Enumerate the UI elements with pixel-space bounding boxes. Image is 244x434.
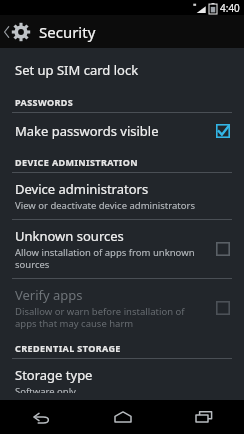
staticText: Disallow or warn before installation of … bbox=[15, 305, 204, 330]
staticText: DEVICE ADMINISTRATION bbox=[15, 156, 138, 168]
staticText: CREDENTIAL STORAGE bbox=[15, 342, 121, 354]
staticText: PASSWORDS bbox=[15, 96, 74, 108]
button[interactable]: Checked bbox=[212, 120, 234, 142]
staticText: View or deactivate device administrators bbox=[15, 199, 195, 212]
staticText: Unknown sources bbox=[15, 227, 124, 245]
staticText: Device administrators bbox=[15, 180, 149, 198]
button[interactable]: Storage type bbox=[0, 359, 244, 400]
button[interactable]: Make passwords visible bbox=[0, 113, 244, 149]
button[interactable]: Navigate up, Security bbox=[0, 15, 244, 48]
button[interactable]: Unchecked bbox=[212, 238, 234, 260]
button[interactable]: Home bbox=[82, 400, 163, 434]
button[interactable]: Back bbox=[0, 400, 82, 434]
staticText: Set up SIM card lock bbox=[15, 61, 139, 79]
staticText: Security bbox=[39, 22, 96, 42]
button[interactable]: Set up SIM card lock bbox=[0, 54, 244, 86]
staticText: Make passwords visible bbox=[15, 122, 159, 140]
button[interactable]: Unknown sources bbox=[0, 220, 244, 278]
button[interactable]: Recent apps bbox=[163, 400, 244, 434]
staticText: Allow installation of apps from unknown … bbox=[15, 246, 204, 271]
button[interactable]: Unchecked bbox=[212, 297, 234, 319]
staticText: Verify apps bbox=[15, 286, 83, 304]
button[interactable]: Device administrators bbox=[0, 173, 244, 219]
button[interactable]: Verify apps bbox=[0, 279, 244, 337]
staticText: 4:40 bbox=[220, 1, 240, 15]
staticText: Software only bbox=[15, 385, 76, 393]
staticText: Storage type bbox=[15, 366, 93, 384]
